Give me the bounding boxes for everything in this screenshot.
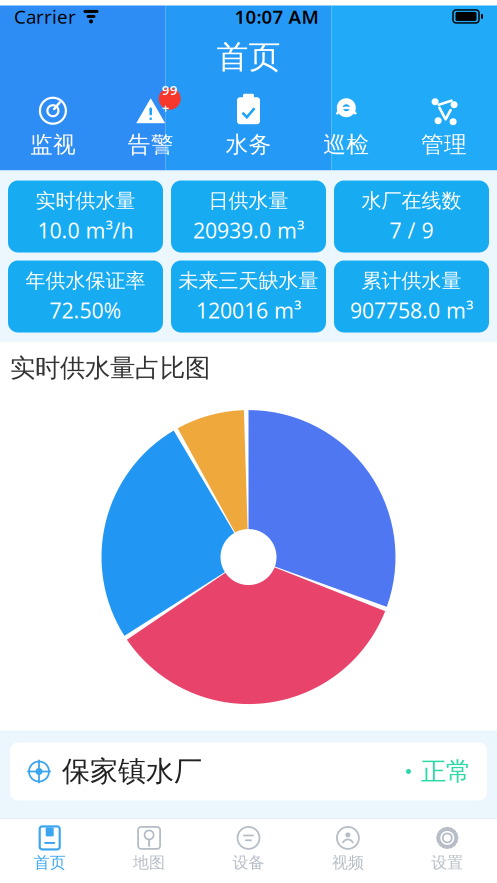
staticText: 视频 [332, 853, 364, 873]
staticText: 巡检 [323, 131, 369, 158]
staticText: 水务 [225, 131, 271, 158]
staticText: 99+ [162, 81, 178, 116]
button[interactable]: 年供水保证率 [8, 260, 163, 332]
staticText: 10.0 m³/h [37, 216, 133, 244]
button[interactable]: 巡检 [297, 91, 395, 162]
button[interactable]: 首页 [0, 819, 99, 879]
staticText: 10:07 AM [234, 4, 318, 29]
button[interactable]: 监视 [4, 91, 102, 162]
button[interactable]: 日供水量 [171, 180, 326, 252]
staticText: 设置 [431, 853, 463, 873]
staticText: 72.50% [49, 296, 121, 324]
staticText: 7 / 9 [389, 216, 433, 244]
staticText: 地图 [133, 853, 165, 873]
button[interactable]: 实时供水量 [8, 180, 163, 252]
button[interactable]: 设置 [398, 819, 497, 879]
staticText: 管理 [421, 131, 467, 158]
staticText: 实时供水量占比图 [10, 352, 210, 384]
button[interactable]: 设备 [199, 819, 298, 879]
staticText: 120016 m³ [196, 296, 301, 324]
staticText: Carrier [14, 4, 76, 29]
button[interactable]: 水务 [200, 91, 297, 162]
button[interactable]: 视频 [298, 819, 398, 879]
button[interactable]: 保家镇水厂 [10, 742, 487, 800]
staticText: 累计供水量 [361, 269, 461, 293]
staticText: 设备 [232, 853, 264, 873]
button[interactable]: 管理 [395, 91, 493, 162]
staticText: 首页 [216, 37, 280, 77]
staticText: 907758.0 m³ [350, 296, 473, 324]
staticText: 告警 [128, 131, 174, 158]
staticText: 保家镇水厂 [62, 754, 202, 789]
button[interactable]: 未来三天缺水量 [171, 260, 326, 332]
button[interactable]: 地图 [99, 819, 199, 879]
button[interactable]: 水厂在线数 [334, 180, 489, 252]
staticText: 实时供水量 [35, 189, 135, 213]
staticText: 日供水量 [208, 189, 288, 213]
staticText: 20939.0 m³ [193, 216, 304, 244]
staticText: 未来三天缺水量 [178, 269, 318, 293]
staticText: 首页 [34, 853, 66, 873]
staticText: 监视 [30, 131, 76, 158]
button[interactable]: 累计供水量 [334, 260, 489, 332]
staticText: 水厂在线数 [361, 189, 461, 213]
button[interactable]: 99+ [102, 91, 200, 162]
staticText: 正常 [421, 756, 471, 787]
staticText: 年供水保证率 [25, 269, 145, 293]
